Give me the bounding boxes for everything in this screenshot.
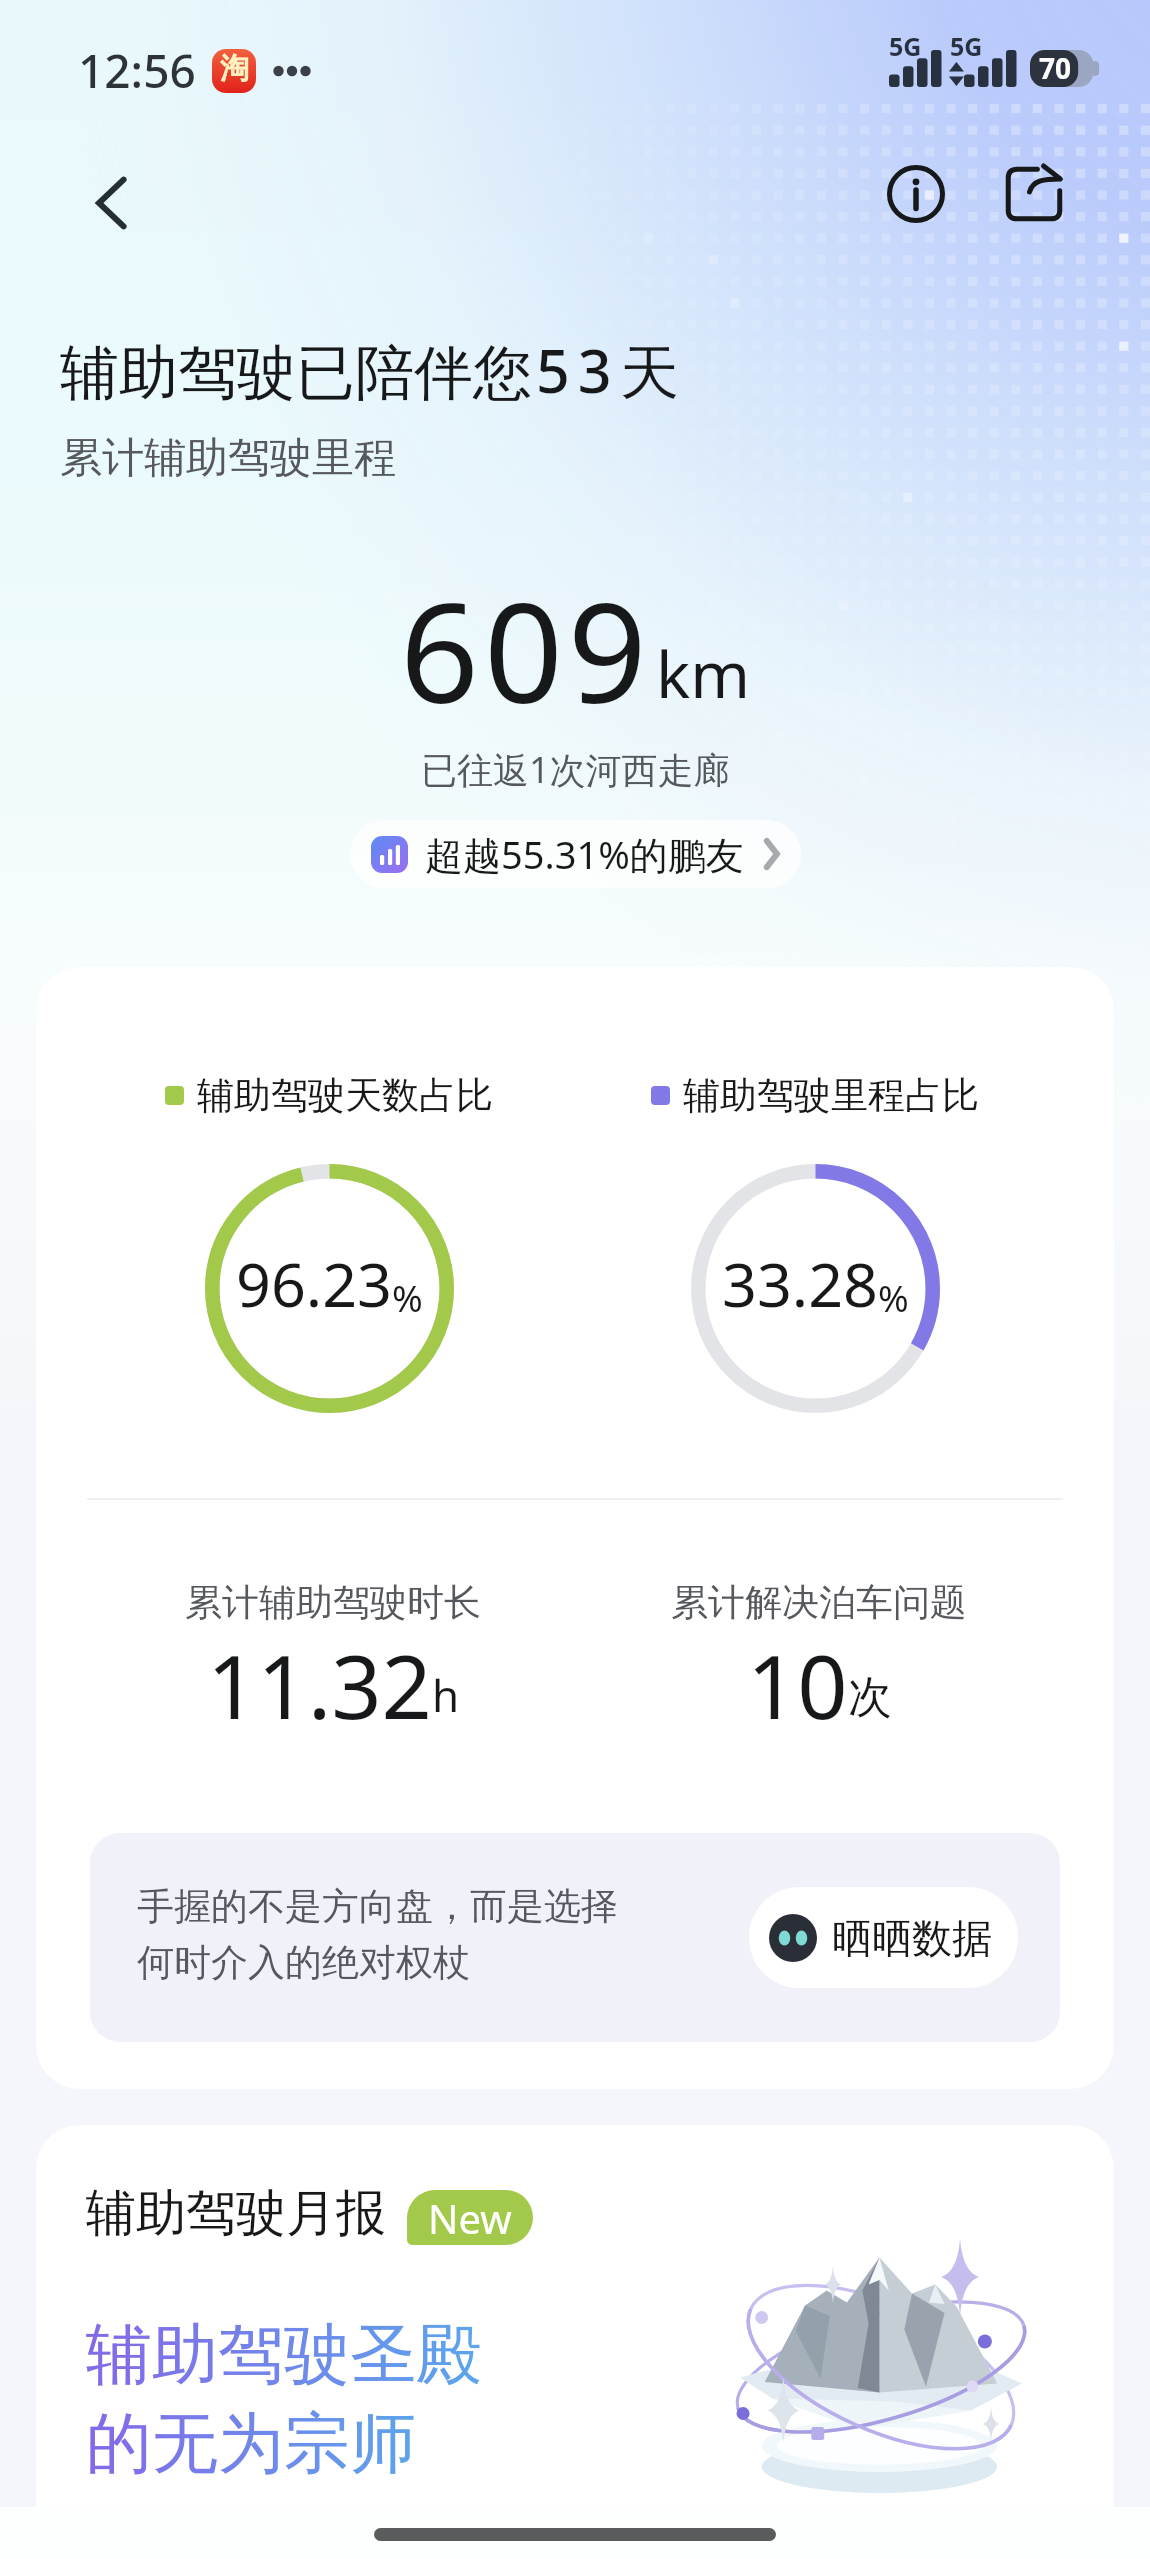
staticText: 何时介入的绝对权杖: [137, 1939, 470, 1986]
staticText: 609: [400, 555, 652, 743]
staticText: 累计辅助驾驶时长: [185, 1579, 481, 1626]
staticText: 70: [1039, 49, 1072, 86]
staticText: 辅助驾驶天数占比: [197, 1072, 493, 1119]
staticText: 累计解决泊车问题: [671, 1579, 967, 1626]
button[interactable]: 晒晒数据: [749, 1887, 1018, 1988]
staticText: 10: [747, 1625, 848, 1733]
staticText: 的无为宗师: [86, 2402, 416, 2485]
staticText: 晒晒数据: [832, 1913, 992, 1963]
staticText: 53: [536, 330, 620, 410]
staticText: 辅助驾驶里程占比: [683, 1072, 979, 1119]
staticText: 96.23: [236, 1242, 392, 1325]
staticText: 已往返1次河西走廊: [421, 745, 730, 794]
staticText: New: [428, 2191, 512, 2245]
button[interactable]: Info: [864, 142, 968, 246]
staticText: 33.28: [722, 1242, 878, 1325]
staticText: 次: [848, 1670, 892, 1725]
staticText: %: [392, 1272, 423, 1322]
button[interactable]: Back: [55, 147, 167, 259]
staticText: 淘: [220, 50, 249, 87]
staticText: 5G: [889, 29, 922, 63]
staticText: 天: [620, 336, 679, 410]
staticText: 12:56: [78, 39, 196, 102]
staticText: %: [878, 1272, 909, 1322]
staticText: km: [656, 630, 751, 717]
staticText: 辅助驾驶月报: [86, 2182, 386, 2245]
button[interactable]: 辅助驾驶月报: [36, 2125, 1114, 2545]
staticText: 辅助驾驶已陪伴您: [60, 336, 532, 410]
button[interactable]: Share: [982, 142, 1086, 246]
staticText: h: [432, 1665, 460, 1725]
button[interactable]: 超越55.31%的鹏友: [350, 820, 801, 888]
staticText: 超越55.31%的鹏友: [425, 828, 744, 880]
staticText: 5G: [950, 29, 983, 63]
staticText: 累计辅助驾驶里程: [60, 432, 396, 485]
staticText: 手握的不是方向盘，而是选择: [137, 1883, 618, 1930]
staticText: 11.32: [207, 1625, 432, 1733]
staticText: 辅助驾驶圣殿: [86, 2313, 482, 2396]
